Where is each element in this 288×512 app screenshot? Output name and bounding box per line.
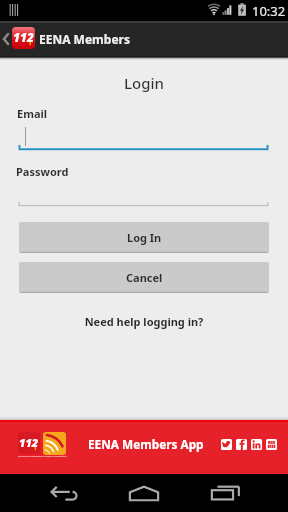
staticText: Password [16,164,69,179]
button[interactable]: Navigate up [0,21,11,56]
button[interactable]: Need help logging in? [0,314,288,329]
staticText: Cancel [126,270,163,285]
button[interactable]: Cancel [19,262,269,293]
staticText: Log In [127,230,162,245]
staticText: european emergency number association [18,454,67,457]
button[interactable]: Log In [19,222,269,253]
button[interactable]: Twitter [221,439,232,450]
button[interactable]: Recent apps [193,474,257,512]
staticText: 10:32 [252,2,286,20]
staticText: Login [0,73,288,93]
button[interactable]: Home [112,474,176,512]
staticText: 112 [19,435,39,450]
button[interactable]: Back [32,474,96,512]
button[interactable]: LinkedIn [251,439,262,450]
staticText: Email [17,106,48,121]
button[interactable]: YouTube [266,439,277,450]
staticText: EENA Members [39,31,130,47]
button[interactable]: Facebook [236,439,247,450]
staticText: EENA Members App [88,436,204,452]
staticText: 112 [13,29,34,45]
